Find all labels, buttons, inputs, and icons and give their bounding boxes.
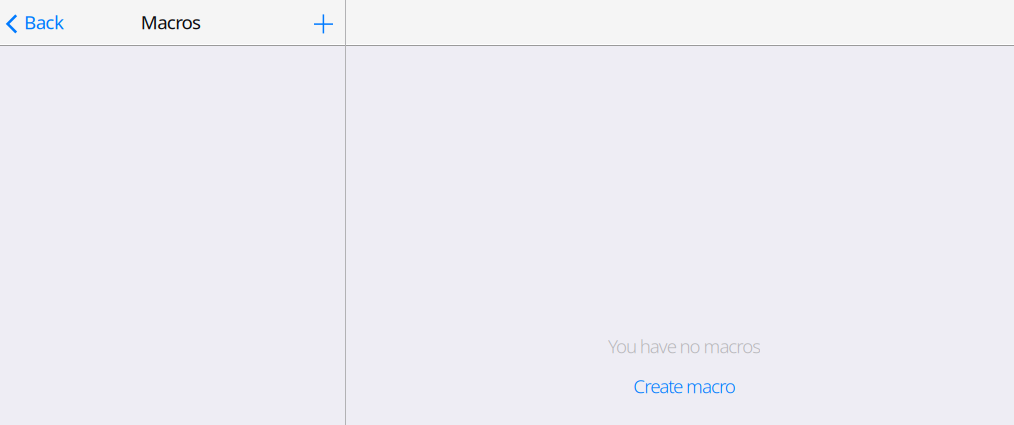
staticText: Create macro <box>633 374 736 398</box>
button[interactable]: New macro <box>302 0 345 44</box>
staticText: You have no macros <box>608 334 761 358</box>
button[interactable]: Create macro <box>619 368 750 404</box>
staticText: Back <box>24 10 64 34</box>
button[interactable]: Back <box>0 0 72 44</box>
staticText: Macros <box>141 10 201 34</box>
